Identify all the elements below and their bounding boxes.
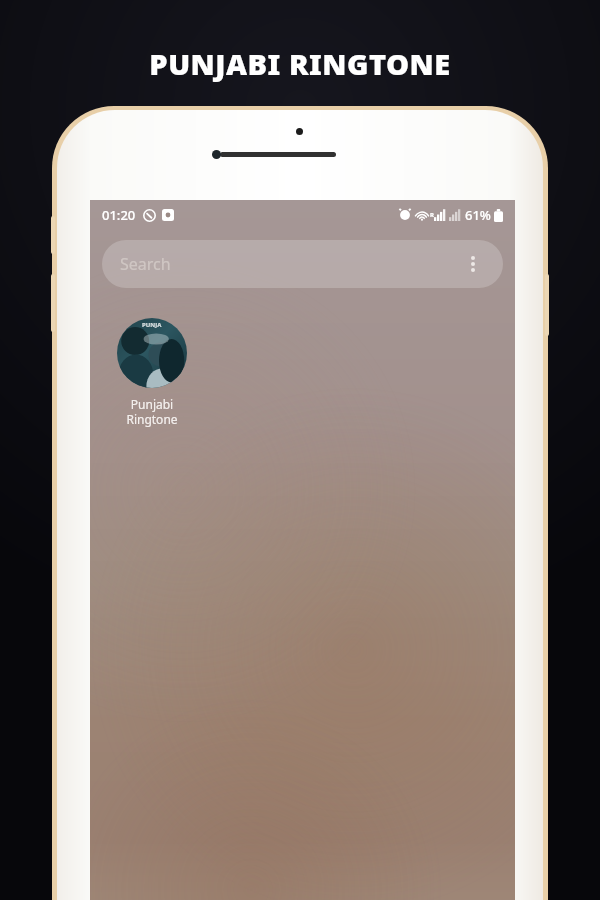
- button[interactable]: Search: [102, 240, 503, 288]
- staticText: R: [430, 211, 434, 219]
- staticText: Search: [120, 253, 171, 275]
- button[interactable]: More options: [461, 252, 485, 276]
- staticText: Punjabi Ringtone: [126, 396, 178, 427]
- staticText: 61%: [465, 206, 491, 224]
- staticText: 01:20: [102, 206, 136, 224]
- button[interactable]: PUNJA: [108, 318, 196, 427]
- staticText: PUNJA: [142, 321, 162, 329]
- staticText: PUNJABI RINGTONE: [0, 44, 600, 83]
